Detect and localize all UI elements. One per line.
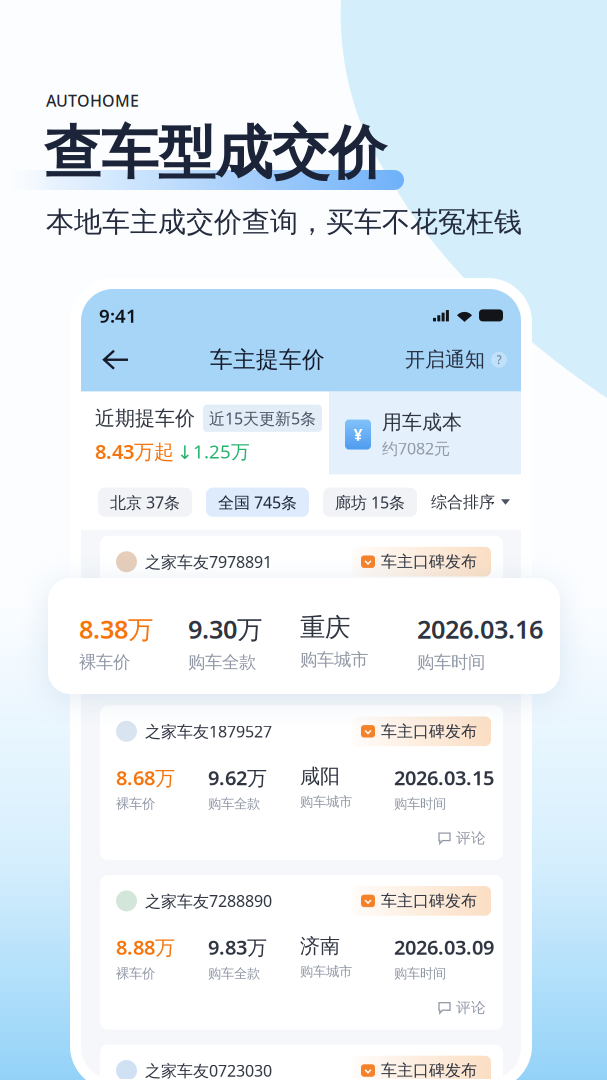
staticText: 购车全款 — [188, 652, 256, 673]
staticText: 车主提车价 — [210, 346, 325, 374]
staticText: 车主口碑发布 — [381, 721, 477, 741]
staticText: 2026.03.16 — [417, 612, 543, 646]
staticText: 购车城市 — [300, 963, 352, 980]
staticText: 济南 — [300, 934, 340, 958]
staticText: 评论 — [456, 829, 486, 847]
staticText: 裸车价 — [79, 652, 130, 673]
staticText: 购车全款 — [208, 626, 260, 642]
staticText: 购车全款 — [208, 965, 260, 982]
button[interactable]: 北京 37条 — [98, 488, 192, 517]
staticText: 购车城市 — [300, 794, 352, 810]
staticText: 裸车价 — [116, 626, 155, 642]
staticText: 之家车友7978891 — [145, 551, 272, 572]
staticText: 购车时间 — [394, 626, 446, 642]
staticText: 8.43万起 — [95, 438, 174, 464]
staticText: 综合排序 — [431, 492, 495, 512]
staticText: 裸车价 — [116, 965, 155, 982]
staticText: 2026.03.09 — [394, 934, 494, 960]
staticText: 购车全款 — [208, 796, 260, 812]
staticText: 8.68万 — [116, 764, 175, 791]
staticText: 车主口碑发布 — [381, 1061, 477, 1080]
staticText: 车主口碑发布 — [381, 552, 477, 572]
staticText: 咸阳 — [300, 764, 340, 789]
staticText: 评论 — [456, 999, 486, 1017]
staticText: ? — [496, 352, 501, 368]
staticText: ↓1.25万 — [177, 439, 250, 464]
staticText: 9.83万 — [208, 934, 267, 960]
staticText: 约7082元 — [382, 438, 450, 459]
button[interactable]: 开启通知 — [405, 347, 507, 372]
staticText: 用车成本 — [382, 410, 462, 435]
button[interactable]: 全国 745条 — [206, 488, 309, 517]
staticText: 近15天更新5条 — [209, 408, 316, 429]
staticText: 9.62万 — [208, 764, 267, 791]
staticText: 近期提车价 — [95, 406, 195, 431]
staticText: 8.88万 — [116, 934, 175, 960]
button[interactable]: 廊坊 15条 — [323, 488, 417, 517]
staticText: 2026.03.15 — [394, 764, 494, 791]
staticText: 重庆 — [300, 594, 340, 619]
staticText: 之家车友7288890 — [145, 890, 272, 911]
staticText: ¥ — [353, 424, 362, 445]
staticText: 购车城市 — [300, 624, 352, 640]
staticText: 本地车主成交价查询，买车不花冤枉钱 — [46, 205, 522, 239]
staticText: 购车城市 — [300, 649, 368, 670]
staticText: 裸车价 — [116, 796, 155, 812]
staticText: 9.30万 — [208, 594, 267, 621]
staticText: 之家车友0723030 — [145, 1060, 272, 1080]
staticText: 开启通知 — [405, 347, 485, 372]
staticText: 查车型成交价 — [44, 118, 386, 188]
staticText: 重庆 — [300, 612, 350, 643]
staticText: 9.30万 — [188, 612, 262, 646]
staticText: 购车时间 — [394, 965, 446, 982]
staticText: 车主口碑发布 — [381, 891, 477, 911]
staticText: 评论 — [456, 659, 486, 677]
button[interactable]: Back — [101, 348, 130, 372]
staticText: 8.38万 — [116, 594, 175, 621]
staticText: 2026.03.16 — [394, 594, 494, 621]
staticText: 全国 745条 — [218, 492, 297, 513]
staticText: 9:41 — [99, 303, 137, 328]
staticText: 北京 37条 — [110, 492, 180, 513]
button[interactable]: 综合排序 — [431, 492, 510, 512]
staticText: 购车时间 — [394, 796, 446, 812]
staticText: 廊坊 15条 — [335, 492, 405, 513]
staticText: 购车时间 — [417, 652, 485, 673]
staticText: 8.38万 — [79, 612, 153, 646]
staticText: AUTOHOME — [46, 90, 139, 111]
staticText: 之家车友1879527 — [145, 721, 272, 742]
